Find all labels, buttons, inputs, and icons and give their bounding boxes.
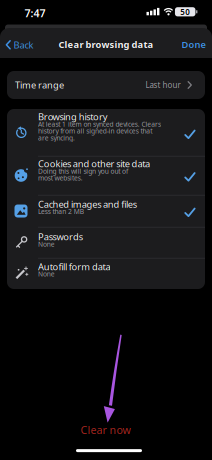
button[interactable]: Back [5,39,33,51]
staticText: 7:47 [24,6,45,20]
staticText: Browsing history [38,110,108,123]
button[interactable]: Done [181,38,205,51]
staticText: Doing this will sign you out of [38,167,128,176]
staticText: Cookies and other site data [38,157,150,170]
staticText: Passwords [38,230,83,243]
staticText: Less than 2 MB [38,207,84,216]
staticText: are syncing. [38,133,75,142]
staticText: history from all signed-in devices that [38,127,152,135]
staticText: Clear browsing data [58,38,153,51]
button[interactable]: Time range [7,71,205,99]
staticText: None [38,240,55,249]
staticText: Clear now [80,423,130,437]
staticText: Autofill form data [38,260,110,273]
staticText: 50 [180,6,190,17]
staticText: Cached images and files [38,198,137,210]
staticText: Time range [15,79,64,91]
staticText: At least 1 item on synced devices. Clear… [38,120,161,129]
staticText: None [38,269,55,278]
staticText: Done [181,38,205,51]
button[interactable]: Clear now [80,423,130,437]
staticText: Back [13,39,33,51]
staticText: Last hour [145,80,180,90]
button[interactable]: Autofill form data [7,258,205,289]
button[interactable]: Cookies and other site data [7,156,205,195]
button[interactable]: Passwords [7,227,205,258]
button[interactable]: Cached images and files [7,195,205,227]
button[interactable]: Browsing history [7,109,205,156]
staticText: most websites. [38,174,83,182]
